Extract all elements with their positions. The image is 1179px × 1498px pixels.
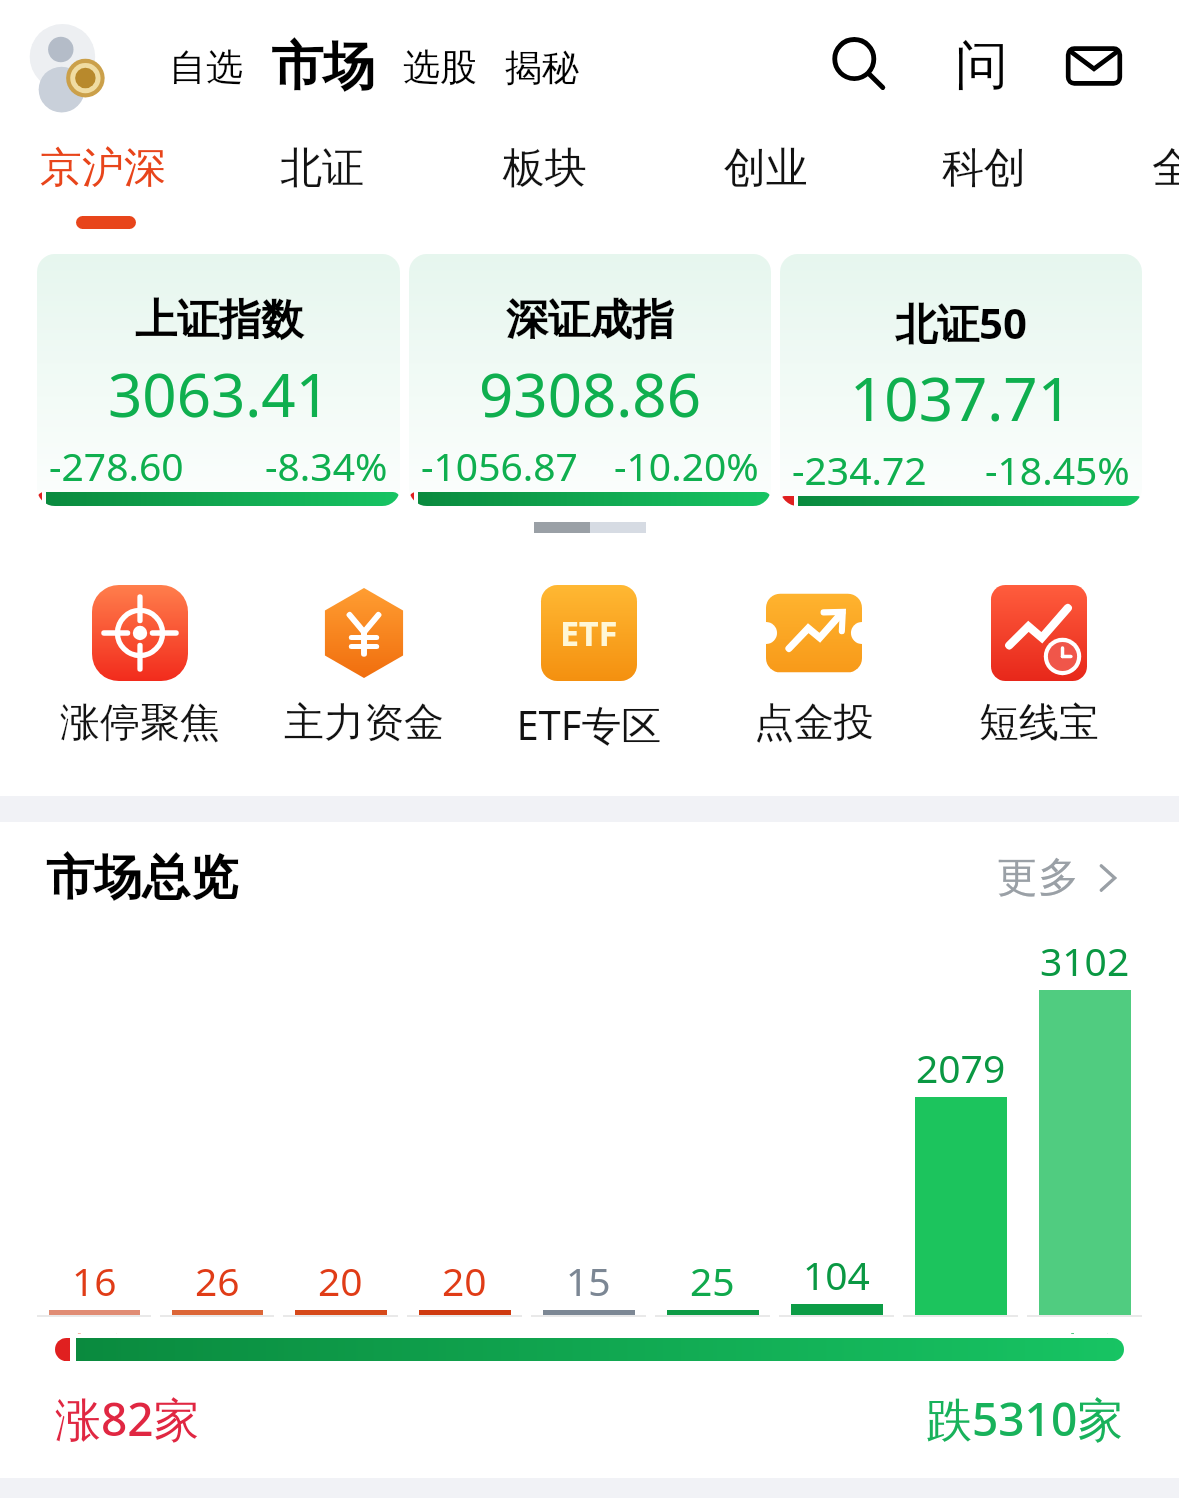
button[interactable]: 创业 bbox=[724, 142, 808, 195]
staticText: 15 bbox=[566, 1254, 611, 1307]
button[interactable]: 点金投 bbox=[701, 585, 926, 747]
button[interactable]: 自选 bbox=[164, 36, 248, 99]
button[interactable]: 科创 bbox=[942, 142, 1026, 195]
staticText: 板块 bbox=[503, 142, 587, 195]
staticText: 涨82家 bbox=[55, 1387, 200, 1450]
staticText: 科创 bbox=[942, 142, 1026, 195]
staticText: 点金投 bbox=[754, 697, 874, 747]
staticText: 20 bbox=[318, 1254, 363, 1307]
staticText: -234.72 bbox=[792, 443, 927, 496]
staticText: 2079 bbox=[916, 1041, 1006, 1094]
staticText: 深证成指 bbox=[506, 294, 674, 347]
staticText: 20 bbox=[442, 1254, 487, 1307]
button[interactable]: 市场 bbox=[266, 26, 380, 108]
staticText: 1037.71 bbox=[850, 357, 1072, 439]
staticText: 涨停聚焦 bbox=[60, 697, 220, 747]
staticText: -10.20% bbox=[614, 439, 759, 492]
button[interactable]: 上证指数 bbox=[37, 254, 400, 506]
staticText: 自选 bbox=[169, 44, 243, 91]
staticText: 北证 bbox=[280, 142, 364, 195]
staticText: 选股 bbox=[403, 44, 477, 91]
button[interactable]: 深证成指 bbox=[409, 254, 771, 506]
staticText: 104 bbox=[803, 1248, 870, 1301]
staticText: 短线宝 bbox=[979, 697, 1099, 747]
staticText: 市场 bbox=[271, 34, 375, 100]
staticText: 主力资金 bbox=[284, 697, 444, 747]
button[interactable]: Profile bbox=[28, 24, 110, 106]
button[interactable]: 北证50 bbox=[780, 254, 1142, 506]
staticText: -278.60 bbox=[49, 439, 184, 492]
staticText: 3063.41 bbox=[108, 353, 330, 435]
staticText: 问 bbox=[955, 32, 1008, 99]
staticText: 26 bbox=[195, 1254, 240, 1307]
button[interactable]: 主力资金 bbox=[252, 585, 476, 747]
button[interactable]: 北证 bbox=[280, 142, 364, 195]
staticText: 北证50 bbox=[895, 294, 1028, 351]
button[interactable]: 涨停聚焦 bbox=[28, 585, 252, 747]
staticText: ETF专区 bbox=[516, 697, 662, 752]
staticText: 跌5310家 bbox=[926, 1387, 1124, 1450]
staticText: 京沪深 bbox=[40, 142, 166, 195]
button[interactable]: 全 bbox=[1152, 142, 1179, 195]
staticText: -1056.87 bbox=[421, 439, 578, 492]
staticText: -8.34% bbox=[265, 439, 388, 492]
staticText: 上证指数 bbox=[135, 294, 303, 347]
staticText: 跌停 bbox=[1046, 1327, 1124, 1334]
staticText: 全 bbox=[1152, 142, 1179, 195]
staticText: -18.45% bbox=[985, 443, 1130, 496]
staticText: 16 bbox=[72, 1254, 117, 1307]
staticText: 涨停 bbox=[55, 1327, 133, 1334]
button[interactable]: ETF bbox=[476, 585, 701, 752]
staticText: 9308.86 bbox=[479, 353, 701, 435]
button[interactable]: 板块 bbox=[503, 142, 587, 195]
button[interactable]: Messages bbox=[1056, 28, 1132, 104]
staticText: ETF bbox=[560, 610, 618, 656]
button[interactable]: 揭秘 bbox=[500, 36, 584, 99]
staticText: 市场总览 bbox=[46, 848, 238, 908]
staticText: 3102 bbox=[1040, 934, 1130, 987]
staticText: 更多 bbox=[997, 852, 1079, 904]
staticText: 创业 bbox=[724, 142, 808, 195]
button[interactable]: 京沪深 bbox=[40, 142, 166, 195]
button[interactable]: 问 bbox=[938, 22, 1024, 108]
button[interactable]: 更多 bbox=[989, 844, 1133, 912]
button[interactable]: 短线宝 bbox=[926, 585, 1151, 747]
button[interactable]: Search bbox=[818, 24, 898, 104]
staticText: 揭秘 bbox=[505, 44, 579, 91]
staticText: 25 bbox=[690, 1254, 735, 1307]
button[interactable]: 选股 bbox=[398, 36, 482, 99]
